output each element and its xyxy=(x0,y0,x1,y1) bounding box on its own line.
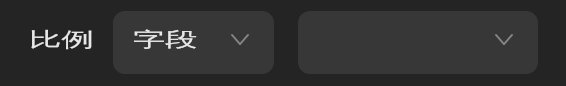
staticText: 比例 xyxy=(29,27,93,51)
staticText: 字段 xyxy=(133,27,197,51)
button[interactable]: 比例 字段 xyxy=(113,11,274,74)
button[interactable]: 选择值 xyxy=(298,11,538,74)
